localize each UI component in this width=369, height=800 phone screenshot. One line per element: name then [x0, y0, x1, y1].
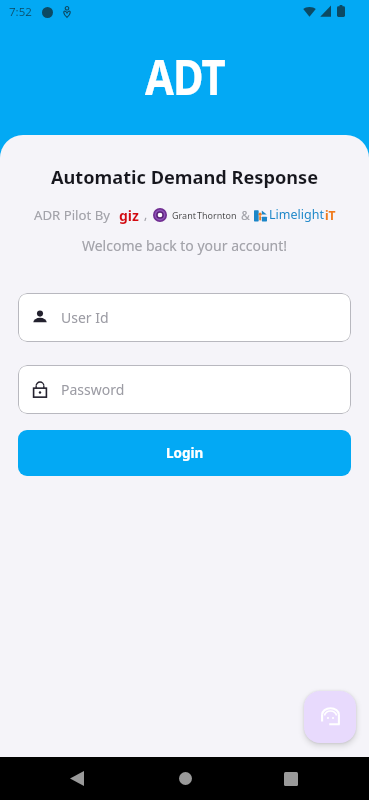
staticText: ADR Pilot By	[34, 206, 110, 224]
staticText: Password	[61, 380, 125, 399]
button[interactable]: Recent apps	[266, 757, 310, 800]
staticText: 7:52	[9, 4, 32, 20]
staticText: Thornton	[197, 209, 237, 221]
staticText: Welcome back to your account!	[0, 236, 369, 255]
staticText: Login	[166, 444, 204, 462]
button[interactable]: Login	[18, 430, 351, 476]
staticText: &	[241, 207, 250, 223]
button[interactable]: Support	[304, 691, 356, 743]
staticText: giz	[119, 206, 139, 225]
button[interactable]: Home	[163, 757, 207, 800]
staticText: Grant	[172, 209, 196, 221]
button[interactable]: Password	[18, 365, 351, 414]
staticText: Automatic Demand Response	[0, 165, 369, 190]
staticText: Limelight	[269, 206, 324, 223]
staticText: ,	[144, 206, 148, 222]
button[interactable]: User Id	[18, 293, 351, 342]
staticText: ADT	[145, 44, 225, 109]
button[interactable]: Back	[59, 757, 103, 800]
staticText: User Id	[61, 308, 109, 327]
staticText: iT	[325, 207, 336, 223]
